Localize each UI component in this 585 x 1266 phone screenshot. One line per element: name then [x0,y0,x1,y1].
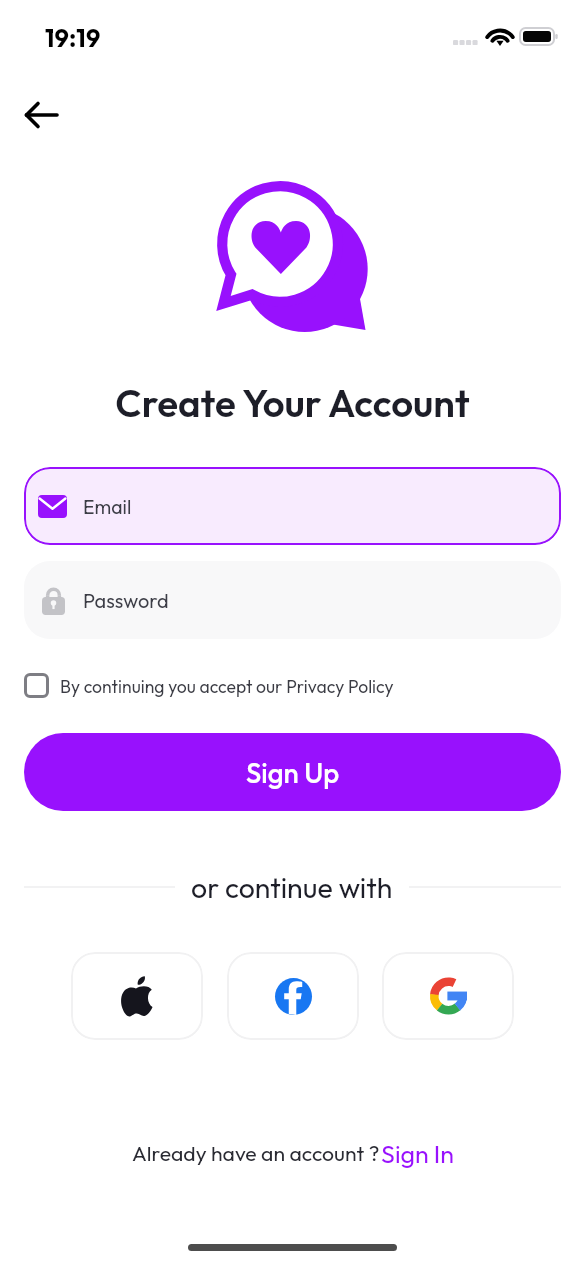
button[interactable]: By continuing you accept our Privacy Pol… [24,670,544,701]
button[interactable]: Sign up with Google [382,952,514,1040]
staticText: Create Your Account [0,379,585,427]
staticText: 19:19 [45,22,101,54]
button[interactable]: Sign up with Facebook [227,952,359,1040]
staticText: Sign In [381,1138,455,1170]
staticText: By continuing you accept our Privacy Pol… [60,675,394,697]
button[interactable]: Sign In [381,1138,455,1170]
staticText: or continue with [191,869,393,905]
staticText: Password [83,588,169,613]
button[interactable]: Sign up with Apple [71,952,203,1040]
staticText: Email [83,494,132,519]
button[interactable]: Back [12,86,70,144]
staticText: Already have an account ? [132,1140,380,1167]
button[interactable]: Password [24,561,561,639]
button[interactable]: Sign Up [24,733,561,811]
button[interactable]: Email [24,467,561,545]
staticText: Sign Up [246,755,340,790]
